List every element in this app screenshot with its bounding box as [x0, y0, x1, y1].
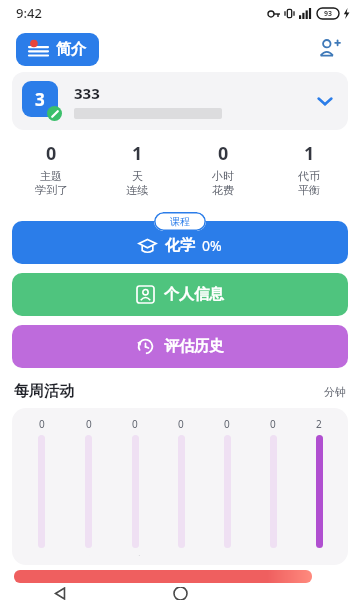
button[interactable]: 0	[65, 417, 112, 556]
staticText: 3	[35, 88, 45, 111]
staticText: 花费	[212, 183, 234, 197]
staticText: 连续	[126, 183, 148, 197]
button[interactable]: 0	[204, 417, 250, 556]
button[interactable]: 1	[266, 141, 352, 197]
button[interactable]: Expand	[312, 88, 338, 114]
staticText: 天	[132, 169, 143, 183]
button[interactable]: Back	[43, 587, 77, 600]
staticText: 2	[316, 417, 322, 431]
staticText: 主题	[40, 169, 62, 183]
staticText: 333	[74, 83, 100, 103]
button[interactable]: 化学	[12, 221, 348, 264]
button[interactable]: 简介	[16, 33, 99, 66]
staticText: 0	[224, 417, 230, 431]
staticText: 课程	[170, 215, 190, 228]
staticText: 1	[132, 141, 143, 166]
staticText: 9:42	[16, 4, 42, 22]
button[interactable]: 个人信息	[12, 273, 348, 316]
staticText: 评估历史	[164, 337, 224, 356]
staticText: 0	[218, 141, 229, 166]
staticText: 1	[304, 141, 315, 166]
staticText: 学到了	[35, 183, 68, 197]
staticText: 0%	[202, 236, 222, 255]
staticText: 平衡	[298, 183, 320, 197]
staticText: 0	[39, 417, 45, 431]
staticText: 小时	[212, 169, 234, 183]
button[interactable]: 3	[12, 72, 348, 130]
staticText: 周六	[125, 554, 145, 556]
button[interactable]: 0	[158, 417, 204, 556]
staticText: 0	[86, 417, 92, 431]
button[interactable]: 课程	[154, 212, 206, 231]
button[interactable]: 0	[8, 141, 94, 197]
staticText: 0	[270, 417, 276, 431]
button[interactable]: 评估历史	[12, 325, 348, 368]
button[interactable]: Home	[163, 587, 197, 600]
staticText: 个人信息	[164, 285, 224, 304]
staticText: 0	[132, 417, 138, 431]
button[interactable]: Add person	[314, 34, 344, 64]
button[interactable]: 1	[94, 141, 180, 197]
staticText: 化学	[165, 236, 195, 255]
button[interactable]: 0	[18, 417, 65, 556]
staticText: 分钟	[324, 385, 346, 399]
button[interactable]: 0	[112, 417, 158, 556]
button[interactable]: 0	[250, 417, 296, 556]
button[interactable]: 2	[296, 417, 342, 556]
staticText: 代币	[298, 169, 320, 183]
staticText: 0	[178, 417, 184, 431]
staticText: 每周活动	[14, 382, 74, 401]
button[interactable]: 0	[180, 141, 266, 197]
staticText: 93	[324, 9, 333, 19]
staticText: 简介	[56, 40, 86, 59]
staticText: 0	[46, 141, 57, 166]
